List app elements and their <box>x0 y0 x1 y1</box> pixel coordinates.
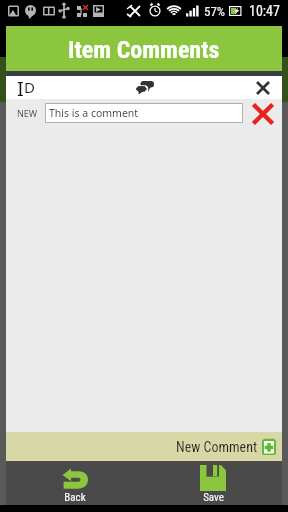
staticText: I <box>17 75 24 98</box>
button[interactable]: Close <box>252 77 274 99</box>
staticText: NEW <box>17 107 38 119</box>
staticText: This is a comment <box>49 106 139 120</box>
staticText: D <box>24 77 35 97</box>
staticText: 10:47 <box>249 3 280 19</box>
button[interactable]: Comments <box>133 76 157 99</box>
staticText: Save <box>203 491 224 504</box>
staticText: New Comment <box>176 439 258 455</box>
button[interactable]: Back <box>6 461 144 505</box>
staticText: Item Comments <box>68 36 220 64</box>
button[interactable]: This is a comment <box>46 104 242 122</box>
button[interactable]: Delete comment <box>251 102 275 126</box>
button[interactable]: New Comment <box>6 432 282 461</box>
button[interactable]: Save <box>144 461 282 505</box>
staticText: Back <box>64 491 86 504</box>
staticText: 57% <box>204 4 226 19</box>
